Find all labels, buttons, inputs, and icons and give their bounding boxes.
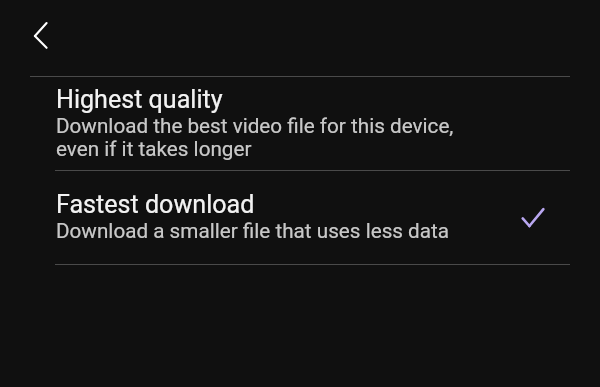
staticText: Fastest download	[56, 190, 255, 219]
other: Selected	[511, 197, 555, 241]
staticText: Download the best video file for this de…	[56, 114, 476, 161]
button[interactable]: Fastest download	[0, 171, 600, 264]
button[interactable]: Highest quality	[0, 77, 600, 170]
button[interactable]: Navigate back	[18, 12, 62, 56]
staticText: Download a smaller file that uses less d…	[56, 219, 450, 243]
staticText: Highest quality	[56, 85, 223, 114]
